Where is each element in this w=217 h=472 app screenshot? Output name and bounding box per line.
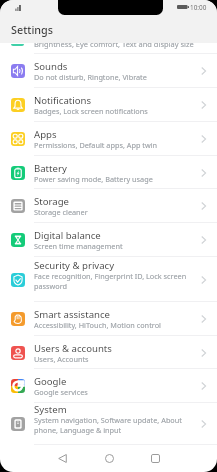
staticText: Google services [34,387,88,397]
button[interactable]: Home [93,445,125,472]
staticText: Users & accounts [34,342,112,355]
staticText: System [34,403,67,416]
button[interactable]: Google [0,369,217,403]
staticText: Storage cleaner [34,207,88,217]
staticText: Settings [11,22,54,37]
button[interactable]: System [0,403,217,445]
button[interactable]: Back [46,445,78,472]
button[interactable]: Storage [0,189,217,223]
staticText: System navigation, Software update, Abou… [34,415,195,435]
staticText: Battery [34,162,67,175]
staticText: Screen time management [34,241,123,251]
staticText: Users, Accounts [34,354,89,364]
staticText: Apps [34,128,57,141]
staticText: Do not disturb, Ringtone, Vibrate [34,72,147,82]
staticText: Accessibility, HiTouch, Motion control [34,320,161,330]
button[interactable]: Notifications [0,88,217,122]
staticText: Notifications [34,94,92,107]
button[interactable]: Users & accounts [0,336,217,369]
staticText: Digital balance [34,229,101,242]
staticText: Power saving mode, Battery usage [34,174,153,184]
staticText: Sounds [34,60,68,73]
button[interactable]: Sounds [0,54,217,88]
button[interactable]: Security & privacy [0,257,217,302]
staticText: Badges, Lock screen notifications [34,106,148,116]
staticText: 10:00 [190,3,207,12]
staticText: Permissions, Default apps, App twin [34,140,158,150]
button[interactable]: Recents [139,445,171,472]
button[interactable]: Apps [0,122,217,156]
button[interactable]: Digital balance [0,223,217,257]
staticText: Security & privacy [34,259,115,272]
staticText: Google [34,375,67,388]
staticText: Brightness, Eye comfort, Text and displa… [34,39,194,49]
staticText: Storage [34,195,69,208]
staticText: Smart assistance [34,308,110,321]
staticText: Face recognition, Fingerprint ID, Lock s… [34,271,195,291]
button[interactable]: Battery [0,156,217,189]
button[interactable]: Smart assistance [0,302,217,336]
